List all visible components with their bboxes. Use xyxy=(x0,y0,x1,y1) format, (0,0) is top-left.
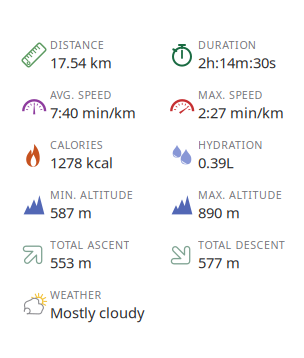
button[interactable]: TOTAL ASCENT xyxy=(21,230,169,280)
staticText: 890 m xyxy=(198,203,240,222)
staticText: 1278 kcal xyxy=(50,153,113,172)
staticText: DISTANCE xyxy=(50,38,104,52)
button[interactable]: AVG. SPEED xyxy=(21,80,169,130)
button[interactable]: MAX. ALTITUDE xyxy=(169,180,304,230)
staticText: Mostly cloudy xyxy=(50,303,144,322)
button[interactable]: WEATHER xyxy=(21,280,169,330)
staticText: 553 m xyxy=(50,253,92,272)
staticText: 17.54 km xyxy=(50,53,112,72)
button[interactable]: MAX. SPEED xyxy=(169,80,304,130)
staticText: DURATION xyxy=(198,38,256,52)
staticText: 0.39L xyxy=(198,153,234,172)
staticText: AVG. SPEED xyxy=(50,88,112,102)
button[interactable]: CALORIES xyxy=(21,130,169,180)
button[interactable]: HYDRATION xyxy=(169,130,304,180)
staticText: MAX. ALTITUDE xyxy=(198,188,282,202)
staticText: MIN. ALTITUDE xyxy=(50,188,133,202)
button[interactable]: DURATION xyxy=(169,30,304,80)
staticText: MAX. SPEED xyxy=(198,88,263,102)
staticText: 7:40 min/km xyxy=(50,103,136,122)
staticText: WEATHER xyxy=(50,288,101,302)
button[interactable]: MIN. ALTITUDE xyxy=(21,180,169,230)
staticText: 577 m xyxy=(198,253,240,272)
staticText: 2h:14m:30s xyxy=(198,53,276,72)
staticText: TOTAL DESCENT xyxy=(198,238,285,252)
staticText: TOTAL ASCENT xyxy=(50,238,129,252)
staticText: HYDRATION xyxy=(198,138,262,152)
button[interactable]: DISTANCE xyxy=(21,30,169,80)
staticText: 2:27 min/km xyxy=(198,103,284,122)
staticText: 587 m xyxy=(50,203,92,222)
button[interactable]: TOTAL DESCENT xyxy=(169,230,304,280)
staticText: CALORIES xyxy=(50,138,103,152)
